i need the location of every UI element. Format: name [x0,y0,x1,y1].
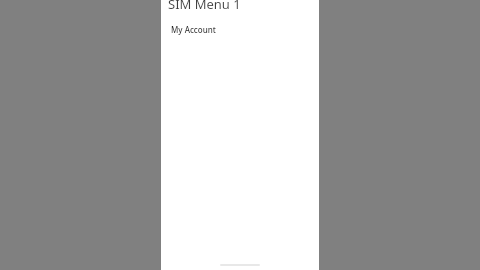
staticText: SIM Menu 1 [168,0,241,13]
button[interactable]: My Account [161,20,319,38]
staticText: My Account [171,24,216,35]
